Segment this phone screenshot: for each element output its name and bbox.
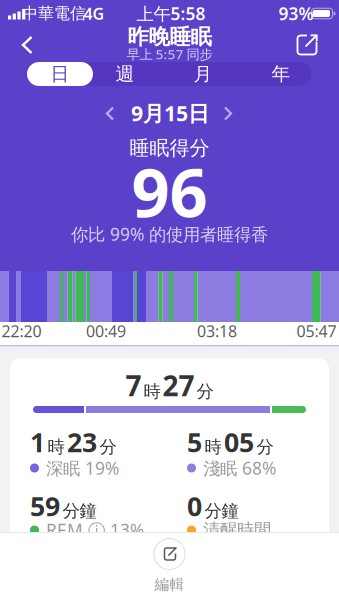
staticText: 分 — [256, 436, 273, 458]
staticText: 22:20 — [1, 320, 41, 342]
staticText: 睡眠得分 — [129, 136, 209, 160]
staticText: 分鐘 — [62, 500, 96, 522]
staticText: 你比 99% 的使用者睡得香 — [71, 222, 268, 245]
staticText: 昨晚睡眠 — [127, 24, 211, 50]
button[interactable]: 年 — [248, 62, 314, 86]
staticText: 5 — [187, 424, 202, 460]
staticText: 05:47 — [296, 320, 336, 342]
staticText: 分鐘 — [204, 500, 238, 522]
staticText: 清醒時間 — [203, 519, 271, 541]
staticText: 時 — [204, 436, 221, 458]
staticText: 4G — [83, 3, 104, 24]
button[interactable]: Previous day — [101, 101, 125, 125]
staticText: 分 — [99, 436, 116, 458]
button[interactable]: 月 — [170, 62, 236, 86]
staticText: REM ⓘ 13% — [46, 518, 144, 541]
staticText: 1 — [30, 424, 45, 460]
staticText: 23 — [67, 424, 97, 460]
staticText: 9月15日 — [131, 99, 209, 127]
staticText: 深眠 19% — [46, 456, 119, 479]
button[interactable]: Back — [6, 25, 46, 65]
staticText: 0 — [187, 488, 202, 524]
staticText: 淺眠 68% — [203, 456, 276, 479]
button[interactable]: 日 — [27, 62, 93, 86]
button[interactable]: 週 — [92, 62, 158, 86]
staticText: 分 — [196, 381, 213, 402]
staticText: 早上 5:57 同步 — [126, 45, 212, 63]
staticText: 59 — [30, 488, 60, 524]
staticText: 月 — [193, 62, 212, 85]
staticText: 96 — [131, 147, 207, 236]
button[interactable]: Edit — [154, 538, 185, 593]
staticText: 00:49 — [86, 320, 126, 342]
staticText: 日 — [50, 62, 69, 85]
staticText: 年 — [271, 62, 290, 85]
button[interactable]: Share — [287, 25, 327, 65]
staticText: 編輯 — [154, 575, 184, 593]
staticText: 27 — [162, 367, 194, 404]
staticText: 時 — [143, 381, 160, 402]
staticText: 03:18 — [197, 320, 237, 342]
button[interactable]: Next day — [213, 101, 237, 125]
staticText: 7 — [125, 367, 141, 404]
staticText: 上午5:58 — [136, 2, 205, 25]
staticText: 中華電信 — [22, 4, 86, 23]
staticText: 時 — [47, 436, 64, 458]
staticText: 93% — [278, 2, 313, 25]
staticText: 05 — [224, 424, 254, 460]
staticText: 週 — [115, 62, 134, 85]
